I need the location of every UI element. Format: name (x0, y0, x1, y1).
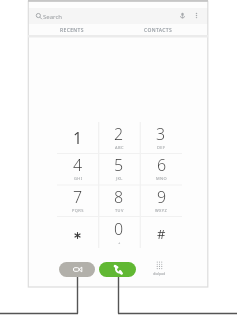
button[interactable]: Video call (59, 262, 95, 277)
staticText: CONTACTS (144, 27, 173, 34)
button[interactable]: 3 (140, 122, 182, 153)
button[interactable]: RECENTS (28, 24, 115, 36)
staticText: + (118, 240, 121, 245)
staticText: RECENTS (60, 27, 84, 34)
button[interactable]: 6 (140, 153, 182, 184)
staticText: 3 (156, 123, 166, 145)
staticText: Search (43, 13, 62, 21)
button[interactable]: Voice search (177, 10, 188, 21)
staticText: 1 (73, 127, 83, 149)
staticText: 8 (114, 186, 124, 208)
button[interactable]: 0 (98, 216, 140, 248)
button[interactable]: 5 (98, 153, 140, 184)
staticText: 7 (73, 186, 83, 208)
button[interactable]: 9 (140, 184, 182, 216)
staticText: GHI (74, 176, 83, 181)
button[interactable]: CONTACTS (115, 24, 202, 36)
button[interactable]: Hide dialpad (149, 261, 169, 276)
staticText: 9 (157, 186, 167, 208)
staticText: MNO (156, 176, 167, 181)
staticText: TUV (115, 208, 124, 213)
button[interactable]: 8 (98, 184, 140, 216)
button[interactable]: # (140, 216, 182, 248)
staticText: JKL (116, 176, 123, 181)
button[interactable]: 2 (98, 122, 140, 153)
staticText: WXYZ (155, 208, 168, 213)
button[interactable]: 7 (57, 184, 98, 216)
button[interactable]: Call (99, 262, 136, 277)
staticText: 4 (73, 154, 83, 176)
button[interactable] (57, 216, 98, 248)
staticText: DEF (157, 145, 166, 150)
button[interactable]: Search (28, 8, 208, 24)
staticText: ABC (115, 145, 124, 150)
button[interactable]: More options (191, 10, 202, 21)
staticText: 6 (157, 154, 167, 176)
button[interactable]: 4 (57, 153, 98, 184)
staticText: 0 (114, 218, 124, 240)
staticText: PQRS (72, 208, 84, 213)
staticText: 5 (114, 154, 124, 176)
staticText: # (157, 225, 166, 243)
staticText: 2 (114, 123, 124, 145)
button[interactable]: 1 (57, 122, 98, 153)
staticText: dialpad (153, 271, 166, 276)
